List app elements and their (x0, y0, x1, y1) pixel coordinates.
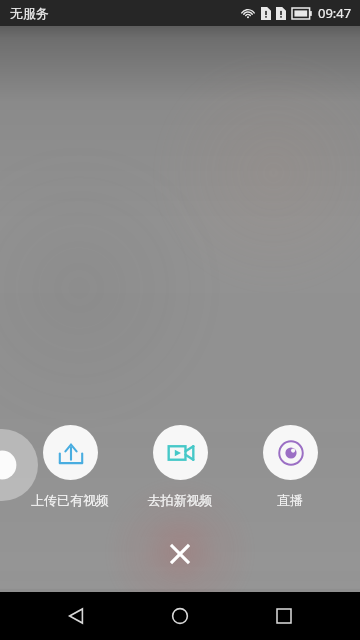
staticText: 09:47 (318, 4, 352, 22)
staticText: 去拍新视频 (125, 492, 235, 508)
staticText: 无服务 (10, 5, 49, 21)
button[interactable]: Home (152, 592, 208, 640)
staticText: 上传已有视频 (15, 492, 125, 508)
button[interactable]: Back (48, 592, 104, 640)
button[interactable]: 上传已有视频 (15, 425, 125, 508)
staticText: 直播 (235, 492, 345, 508)
button[interactable]: 直播 (235, 425, 345, 508)
button[interactable]: Recents (256, 592, 312, 640)
button[interactable]: 关闭 (158, 532, 202, 576)
button[interactable]: 去拍新视频 (125, 425, 235, 508)
